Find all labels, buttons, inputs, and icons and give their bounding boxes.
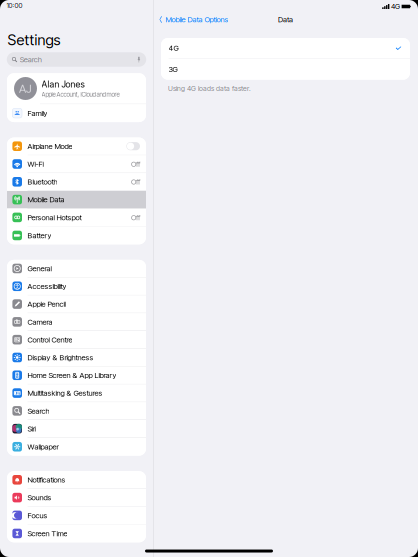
button[interactable]: Notifications [7,471,146,489]
button[interactable]: Accessibility [7,278,146,295]
button[interactable]: Screen Time [7,524,146,542]
button[interactable]: Apple Pencil [7,295,146,313]
staticText: 10:00 [7,1,23,10]
staticText: Off [131,159,140,169]
button[interactable]: Display & Brightness [7,349,146,367]
staticText: General [27,264,51,273]
staticText: Display & Brightness [27,353,93,362]
button[interactable]: Battery [7,226,146,244]
staticText: Using 4G loads data faster. [168,84,251,93]
staticText: Mobile Data Options [165,15,228,24]
staticText: Off [131,177,140,186]
staticText: Alan Jones [41,79,84,90]
staticText: Apple Pencil [27,299,65,309]
button[interactable]: 3G [161,59,410,80]
button[interactable]: Search [7,402,146,420]
staticText: Notifications [27,475,65,484]
button[interactable]: Multitasking & Gestures [7,384,146,402]
staticText: Camera [27,317,52,326]
staticText: Wallpaper [27,442,58,451]
button[interactable]: Wallpaper [7,438,146,456]
staticText: 4G [391,2,400,11]
staticText: Apple Account, iCloud and more [41,91,119,98]
button[interactable]: Airplane Mode [7,137,146,155]
staticText: Family [27,108,47,118]
staticText: Screen Time [27,529,67,538]
staticText: Control Centre [27,335,72,344]
button[interactable]: Siri [7,420,146,438]
button[interactable]: Home Screen & App Library [7,367,146,384]
button[interactable]: Focus [7,507,146,524]
button[interactable]: Personal Hotspot [7,209,146,226]
button[interactable]: Bluetooth [7,173,146,191]
staticText: Bluetooth [27,177,57,186]
button[interactable]: Mobile Data [7,191,146,209]
staticText: Focus [27,511,47,520]
staticText: Search [27,406,49,415]
button[interactable]: Mobile Data Options [153,12,233,27]
staticText: 3G [169,65,178,74]
staticText: Wi-Fi [27,159,43,169]
staticText: Home Screen & App Library [27,371,116,380]
staticText: Accessibility [27,282,66,291]
staticText: Siri [27,424,35,433]
button[interactable]: AJ [7,73,146,104]
button[interactable]: Wi-Fi [7,155,146,173]
staticText: Multitasking & Gestures [27,388,102,398]
button[interactable]: Sounds [7,489,146,507]
button[interactable]: 4G [161,38,410,59]
staticText: Airplane Mode [27,142,72,151]
staticText: Off [131,213,140,222]
button[interactable]: Control Centre [7,331,146,349]
staticText: Battery [27,231,51,240]
staticText: 4G [169,43,179,53]
button[interactable]: Camera [7,313,146,331]
staticText: Sounds [27,493,51,502]
staticText: Search [20,55,42,64]
staticText: Mobile Data [27,195,64,204]
staticText: Personal Hotspot [27,213,81,222]
button[interactable]: General [7,260,146,278]
button[interactable]: Family [7,104,146,122]
staticText: Settings [7,31,60,49]
staticText: AJ [19,82,32,95]
staticText: Data [278,15,293,24]
